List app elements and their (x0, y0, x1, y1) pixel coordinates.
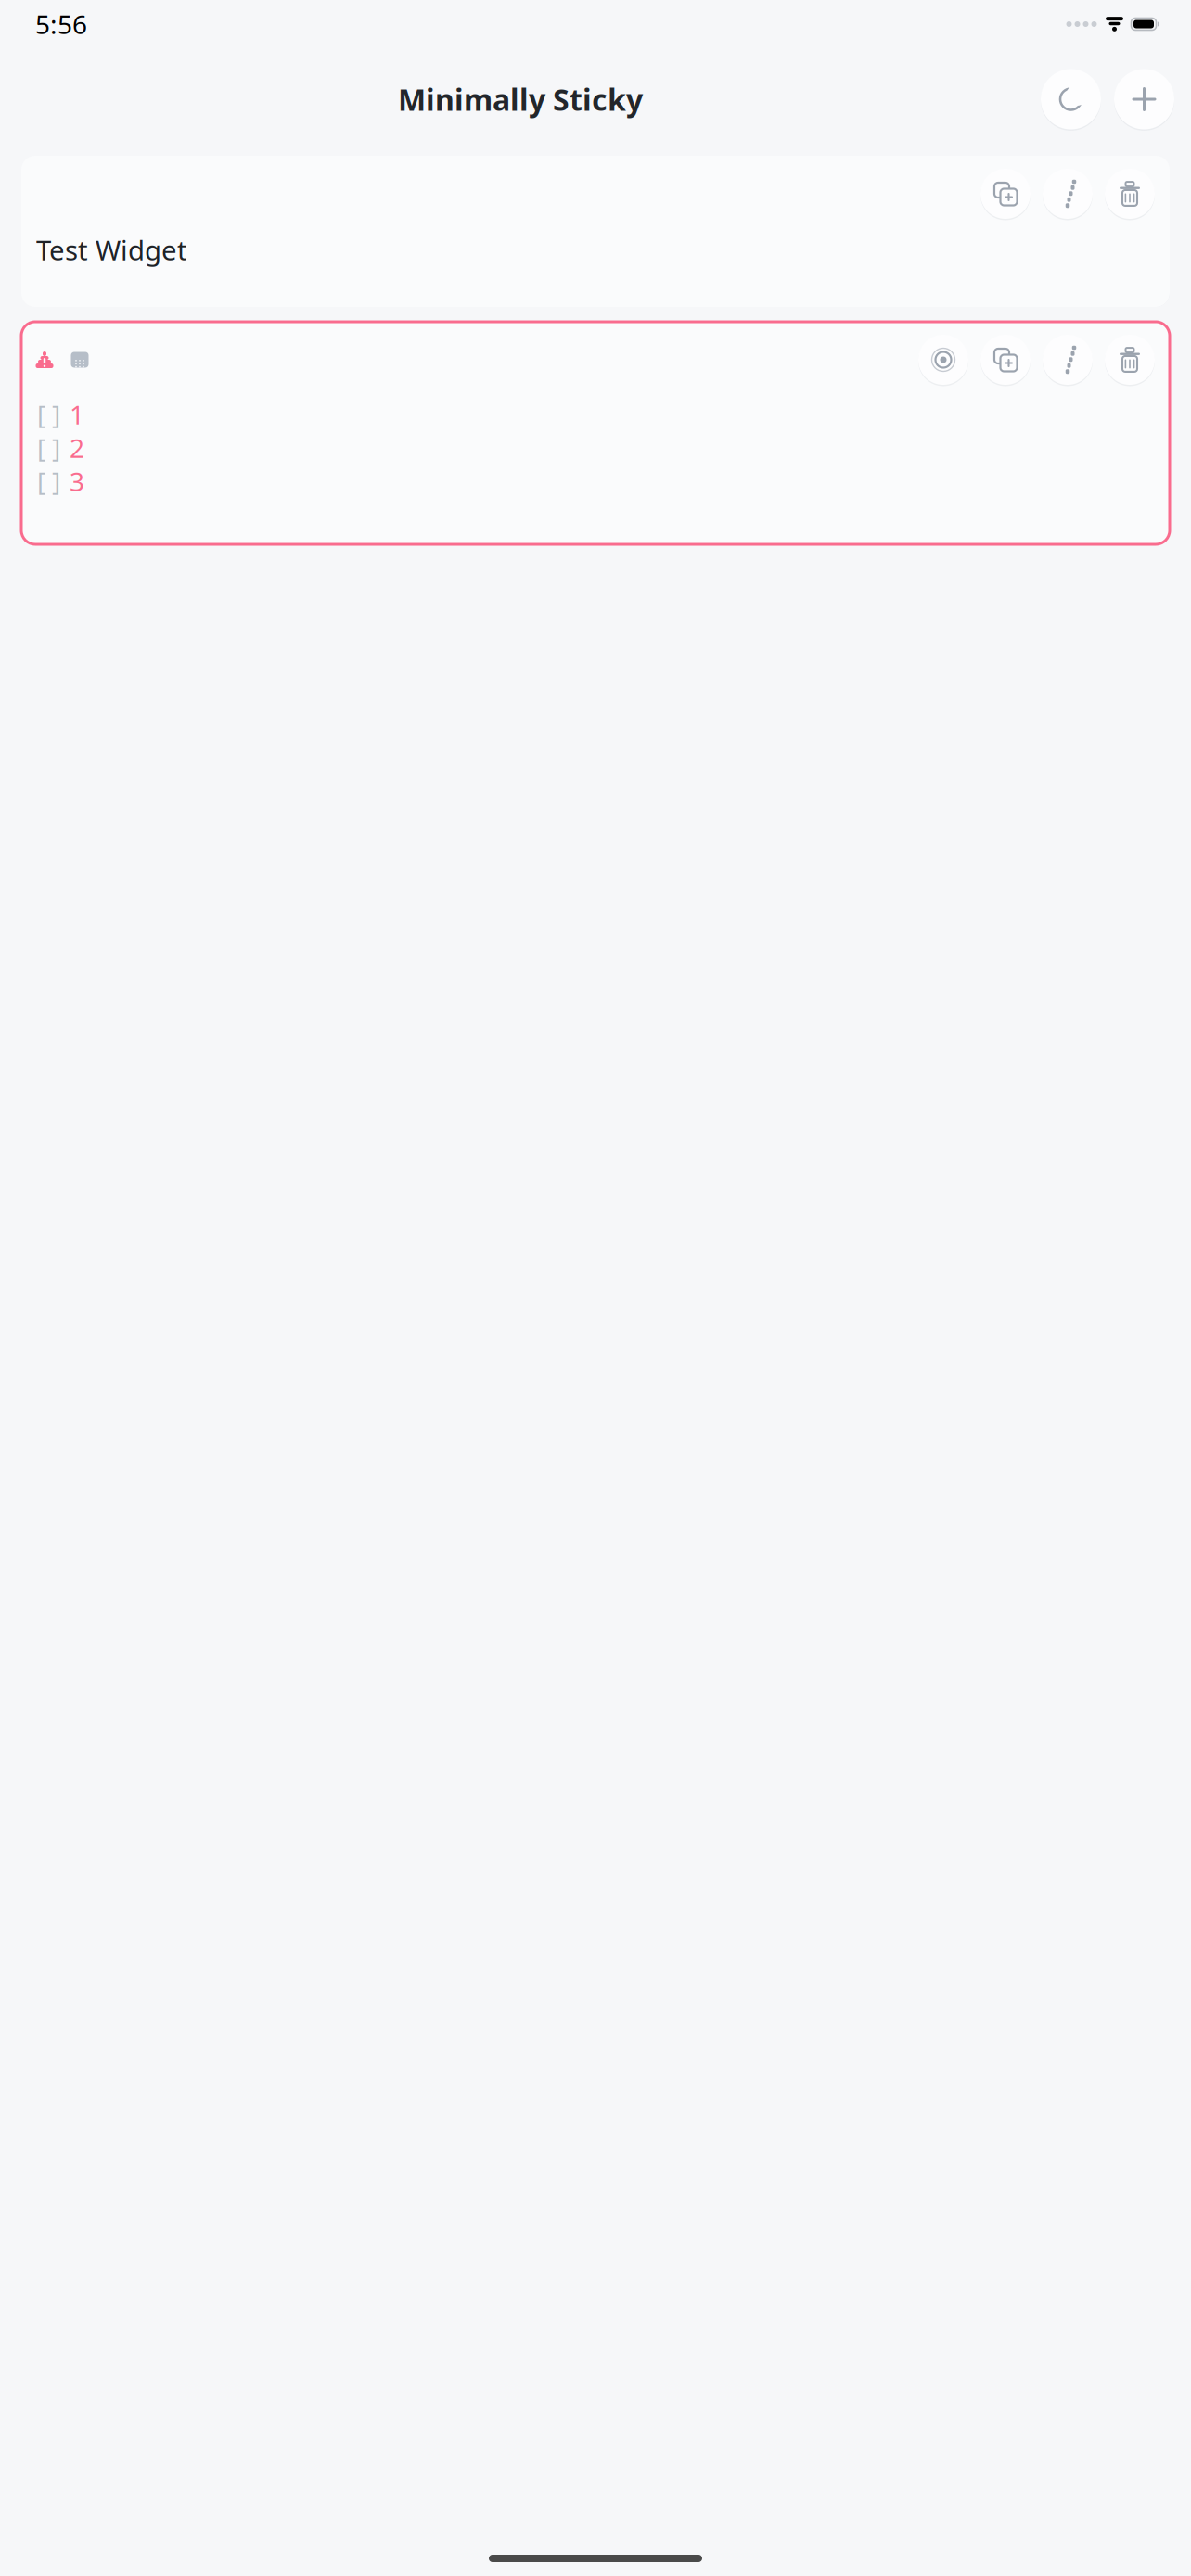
button[interactable]: Delete (1105, 335, 1155, 385)
staticText: 3 (70, 464, 84, 499)
staticText: 1 (70, 397, 84, 432)
button[interactable]: [ ] (37, 431, 1170, 465)
button[interactable]: Delete (1105, 169, 1155, 219)
button[interactable]: Edit (1043, 335, 1093, 385)
button[interactable]: [ ] (37, 465, 1170, 498)
button[interactable]: Duplicate (980, 335, 1031, 385)
button[interactable]: Edit (1043, 169, 1093, 219)
staticText: Test Widget (36, 232, 187, 268)
button[interactable]: Focus (918, 335, 968, 385)
staticText: Minimally Sticky (398, 80, 643, 119)
staticText: 5:56 (35, 7, 87, 41)
staticText: 2 (70, 431, 84, 465)
button[interactable]: Add widget (1114, 69, 1174, 129)
staticText: [ ] (37, 397, 60, 432)
button[interactable]: [ ] (37, 398, 1170, 431)
button[interactable]: Dark mode (1041, 69, 1101, 129)
button[interactable]: Duplicate (980, 169, 1031, 219)
staticText: [ ] (37, 464, 60, 499)
staticText: [ ] (37, 431, 60, 465)
